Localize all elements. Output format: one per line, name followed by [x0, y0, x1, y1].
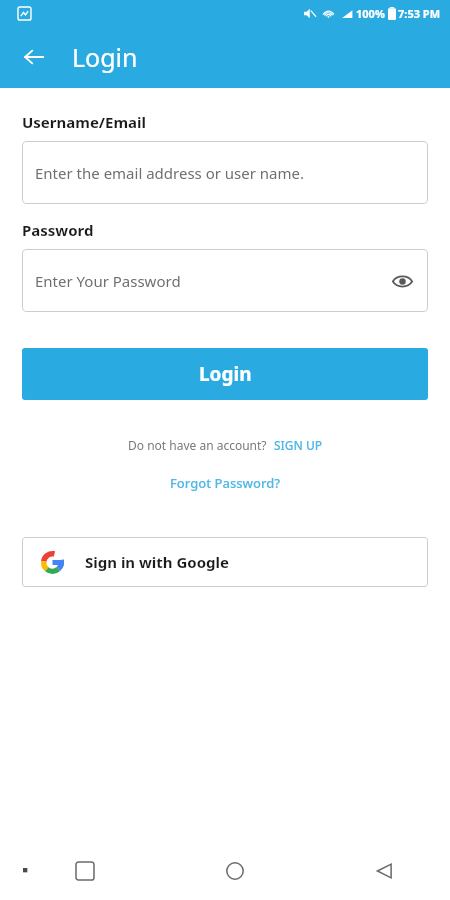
staticText: Enter Your Password: [35, 271, 181, 291]
staticText: Login: [72, 40, 138, 74]
staticText: Enter the email address or user name.: [35, 163, 305, 183]
staticText: Forgot Password?: [170, 474, 281, 492]
button[interactable]: Home: [212, 848, 258, 894]
button[interactable]: Show password: [384, 263, 420, 299]
staticText: Do not have an account?: [128, 437, 267, 453]
button[interactable]: Enter the email address or user name.: [22, 141, 428, 204]
staticText: SIGN UP: [274, 437, 323, 453]
button[interactable]: Back: [13, 36, 55, 78]
staticText: 7:53 PM: [398, 6, 441, 21]
staticText: Username/Email: [22, 112, 147, 132]
staticText: Password: [22, 220, 94, 240]
button[interactable]: SIGN UP: [274, 437, 323, 453]
button[interactable]: Back: [362, 848, 408, 894]
button[interactable]: Recents: [62, 848, 108, 894]
button[interactable]: Sign in with Google: [22, 537, 428, 587]
staticText: Sign in with Google: [85, 552, 230, 572]
button[interactable]: Login: [22, 348, 428, 400]
staticText: Login: [199, 361, 252, 387]
staticText: 100%: [356, 6, 385, 21]
button[interactable]: Enter Your Password: [22, 249, 428, 312]
button[interactable]: Forgot Password?: [170, 474, 281, 492]
